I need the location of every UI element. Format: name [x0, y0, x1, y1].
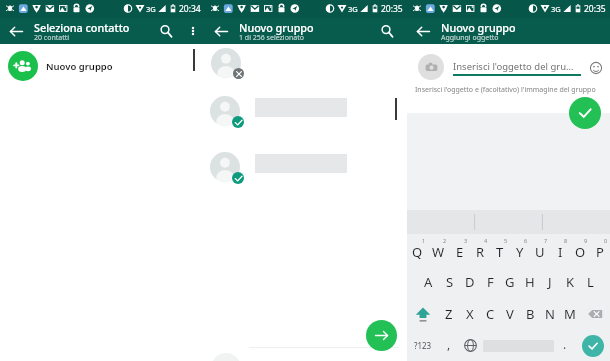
staticText: S [446, 273, 454, 291]
button[interactable]: Nuovo gruppo [0, 44, 205, 90]
staticText: M [564, 305, 576, 323]
staticText: 8 [564, 237, 568, 244]
button[interactable]: A [418, 266, 439, 298]
button[interactable]: 1 [407, 234, 428, 266]
button[interactable]: Space [481, 330, 555, 361]
staticText: 5 [504, 237, 508, 244]
button[interactable]: Change language [459, 330, 481, 361]
button[interactable]: 4 [470, 234, 490, 266]
staticText: X [466, 305, 474, 323]
button[interactable]: ?123 [407, 330, 439, 361]
staticText: . [563, 336, 567, 352]
staticText: 3G [348, 4, 358, 14]
staticText: Inserisci l'oggetto e (facoltativo) l'im… [415, 85, 596, 95]
staticText: 2 [443, 237, 447, 244]
button[interactable]: 2 [428, 234, 449, 266]
staticText: V [506, 305, 514, 323]
staticText: Nuovo gruppo [46, 60, 113, 73]
button[interactable]: Emoji [584, 56, 607, 79]
button[interactable]: Z [438, 298, 459, 330]
staticText: L [587, 273, 594, 291]
staticText: U [535, 243, 545, 261]
button[interactable]: M [560, 298, 580, 330]
staticText: K [566, 273, 575, 291]
staticText: Seleziona contatto [34, 20, 130, 35]
button[interactable]: Search [373, 18, 401, 44]
staticText: E [456, 243, 464, 261]
button[interactable]: F [480, 266, 500, 298]
staticText: H [525, 273, 535, 291]
staticText: 20:35 [381, 3, 403, 15]
button[interactable]: N [540, 298, 560, 330]
staticText: 3G [146, 4, 156, 14]
staticText: 9 [584, 237, 588, 244]
button[interactable]: L [580, 266, 600, 298]
staticText: B [526, 305, 535, 323]
staticText: F [487, 273, 494, 291]
staticText: I [558, 243, 563, 261]
button[interactable] [205, 85, 407, 141]
staticText: Nuovo gruppo [441, 20, 516, 35]
button[interactable]: V [500, 298, 520, 330]
staticText: C [486, 305, 495, 323]
staticText: P [596, 243, 604, 261]
button[interactable]: 5 [490, 234, 510, 266]
staticText: Aggiungi oggetto [441, 33, 499, 43]
button[interactable]: Enter [575, 330, 610, 361]
staticText: Q [412, 243, 423, 261]
button[interactable]: 0 [590, 234, 610, 266]
button[interactable]: Remove [233, 68, 244, 79]
button[interactable]: J [540, 266, 560, 298]
staticText: J [548, 273, 552, 291]
button[interactable]: B [520, 298, 540, 330]
button[interactable]: 9 [570, 234, 590, 266]
staticText: 1 di 256 selezionato [239, 33, 304, 43]
staticText: Nuovo gruppo [239, 20, 314, 35]
staticText: 4 [484, 237, 488, 244]
button[interactable]: , [439, 330, 459, 361]
button[interactable]: Add group image [418, 54, 444, 80]
button[interactable]: 8 [550, 234, 570, 266]
staticText: Y [516, 243, 524, 261]
staticText: , [447, 336, 451, 352]
staticText: 0 [604, 237, 608, 244]
staticText: 3G [551, 4, 561, 14]
button[interactable]: K [560, 266, 580, 298]
button[interactable]: X [459, 298, 480, 330]
button[interactable]: C [480, 298, 500, 330]
button[interactable]: 6 [510, 234, 530, 266]
button[interactable]: Back [205, 18, 238, 44]
button[interactable]: Back [0, 18, 33, 44]
button[interactable]: H [520, 266, 540, 298]
button[interactable]: S [439, 266, 460, 298]
button[interactable]: Search [152, 18, 180, 44]
button[interactable]: Shift [407, 298, 438, 330]
staticText: 20:35 [584, 3, 606, 15]
staticText: 6 [524, 237, 528, 244]
button[interactable]: More options [180, 18, 205, 44]
staticText: 7 [544, 237, 548, 244]
button[interactable] [205, 141, 407, 197]
button[interactable]: 3 [449, 234, 470, 266]
button[interactable]: Next [366, 320, 397, 351]
staticText: N [545, 305, 555, 323]
staticText: A [424, 273, 433, 291]
staticText: G [505, 273, 515, 291]
staticText: R [476, 243, 485, 261]
staticText: 1 [422, 237, 426, 244]
button[interactable]: D [460, 266, 480, 298]
staticText: 3 [464, 237, 468, 244]
button[interactable]: 7 [530, 234, 550, 266]
staticText: 20 contatti [34, 33, 70, 43]
staticText: Z [445, 305, 453, 323]
staticText: Inserisci l'oggetto del gru… [453, 60, 574, 73]
staticText: W [432, 243, 445, 261]
staticText: 20:34 [179, 3, 201, 15]
staticText: T [496, 243, 504, 261]
staticText: D [465, 273, 475, 291]
button[interactable]: Confirm [569, 97, 601, 129]
button[interactable]: Back [407, 18, 440, 44]
button[interactable]: G [500, 266, 520, 298]
button[interactable]: . [555, 330, 575, 361]
button[interactable]: Backspace [580, 298, 610, 330]
